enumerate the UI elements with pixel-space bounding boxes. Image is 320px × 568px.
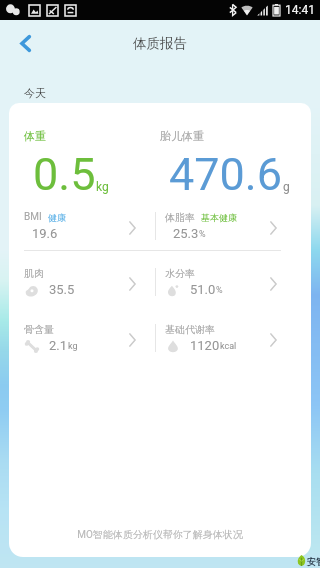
button[interactable]: 水分率 — [157, 262, 296, 306]
staticText: 19.6 — [32, 226, 58, 241]
staticText: kcal — [220, 341, 237, 352]
staticText: % — [199, 229, 206, 240]
staticText: 胎儿体重 — [160, 129, 204, 143]
staticText: 体脂率 — [165, 211, 195, 224]
staticText: kg — [96, 180, 109, 194]
staticText: kg — [68, 341, 78, 352]
staticText: 470.6 — [169, 148, 283, 201]
button[interactable]: 肌肉 — [16, 262, 155, 306]
staticText: 肌肉 — [24, 267, 44, 280]
staticText: g — [283, 180, 290, 194]
staticText: BMI — [24, 211, 42, 223]
button[interactable]: BMI — [16, 206, 155, 250]
staticText: 今天 — [24, 86, 46, 100]
staticText: 51.0 — [190, 282, 216, 297]
staticText: MO智能体质分析仪帮你了解身体状况 — [9, 528, 311, 541]
staticText: 0.5 — [33, 148, 96, 201]
staticText: 1120 — [190, 338, 220, 353]
button[interactable]: 体脂率 — [157, 206, 296, 250]
staticText: 25.3 — [173, 226, 199, 241]
staticText: 安智 — [307, 556, 320, 567]
staticText: 水分率 — [165, 267, 195, 280]
staticText: 2.1 — [49, 338, 68, 353]
staticText: % — [216, 285, 223, 296]
staticText: 骨含量 — [24, 323, 54, 336]
staticText: 基础代谢率 — [165, 323, 215, 336]
staticText: 基本健康 — [201, 212, 237, 223]
button[interactable]: 基础代谢率 — [157, 318, 296, 362]
staticText: 健康 — [48, 212, 66, 223]
staticText: 14:41 — [285, 3, 315, 17]
button[interactable]: 骨含量 — [16, 318, 155, 362]
button[interactable]: Back — [8, 30, 42, 56]
staticText: 体质报告 — [133, 35, 187, 52]
staticText: 35.5 — [49, 282, 75, 297]
staticText: 体重 — [24, 129, 46, 143]
